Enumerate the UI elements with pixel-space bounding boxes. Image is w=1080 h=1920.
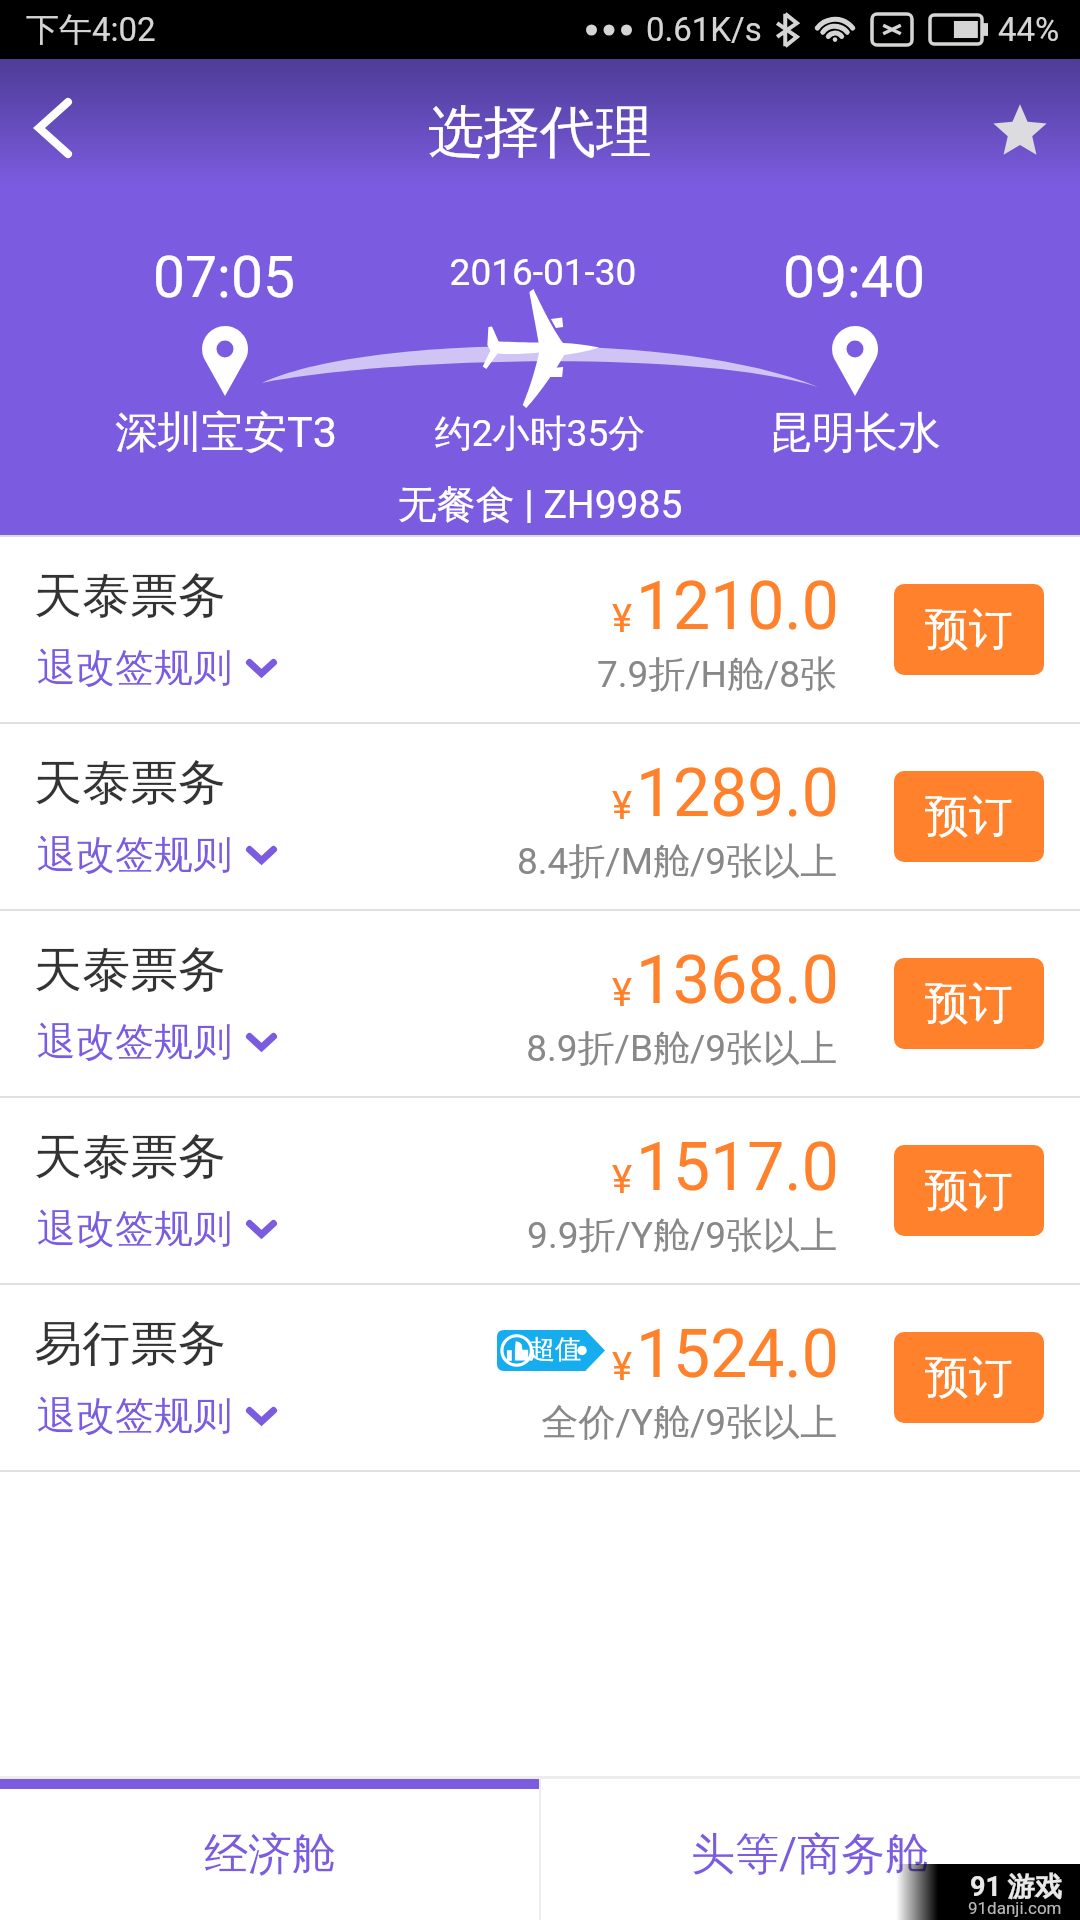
- button[interactable]: 退改签规则: [33, 825, 281, 884]
- staticText: 8.9折/B舱/9张以上: [251, 1025, 837, 1072]
- staticText: ¥: [612, 597, 632, 642]
- staticText: 天泰票务: [34, 566, 226, 626]
- button[interactable]: 退改签规则: [33, 1199, 281, 1258]
- button[interactable]: 天泰票务: [0, 537, 1080, 722]
- staticText: 深圳宝安T3: [58, 406, 394, 460]
- staticText: 无餐食 | ZH9985: [0, 480, 1080, 529]
- staticText: 天泰票务: [34, 940, 226, 1000]
- staticText: 91 游戏: [970, 1870, 1062, 1904]
- staticText: 选择代理: [428, 97, 652, 168]
- staticText: 退改签规则: [37, 1204, 232, 1253]
- staticText: 退改签规则: [37, 1017, 232, 1066]
- staticText: 0.61K/s: [646, 10, 762, 49]
- staticText: 8.4折/M舱/9张以上: [251, 838, 837, 885]
- button[interactable]: 经济舱: [0, 1776, 539, 1920]
- staticText: 下午4:02: [26, 9, 156, 51]
- staticText: 1524.0: [636, 1316, 839, 1393]
- staticText: 预订: [925, 976, 1013, 1031]
- button[interactable]: 退改签规则: [33, 1386, 281, 1445]
- button[interactable]: 预订: [894, 584, 1044, 675]
- staticText: 07:05: [104, 244, 344, 311]
- button[interactable]: 头等/商务舱: [541, 1776, 1080, 1920]
- button[interactable]: 天泰票务: [0, 1098, 1080, 1283]
- staticText: 预订: [925, 602, 1013, 657]
- staticText: 09:40: [734, 244, 974, 311]
- staticText: ¥: [612, 1158, 632, 1203]
- staticText: 预订: [925, 1163, 1013, 1218]
- staticText: 退改签规则: [37, 643, 232, 692]
- button[interactable]: Favorite: [964, 59, 1080, 186]
- button[interactable]: 天泰票务: [0, 911, 1080, 1096]
- staticText: 易行票务: [34, 1314, 226, 1374]
- staticText: ¥: [612, 1345, 632, 1390]
- staticText: 2016-01-30: [3, 251, 1080, 294]
- button[interactable]: Back: [0, 59, 106, 186]
- staticText: 9.9折/Y舱/9张以上: [251, 1212, 837, 1259]
- staticText: ¥: [612, 971, 632, 1016]
- button[interactable]: 易行票务: [0, 1285, 1080, 1470]
- staticText: 退改签规则: [37, 1391, 232, 1440]
- staticText: 超值: [529, 1333, 581, 1366]
- button[interactable]: 退改签规则: [33, 638, 281, 697]
- button[interactable]: 预订: [894, 771, 1044, 862]
- staticText: 天泰票务: [34, 753, 226, 813]
- staticText: 1517.0: [636, 1129, 839, 1206]
- staticText: 预订: [925, 1350, 1013, 1405]
- staticText: 预订: [925, 789, 1013, 844]
- button[interactable]: 预订: [894, 1332, 1044, 1423]
- staticText: 1210.0: [636, 568, 839, 645]
- staticText: 44%: [998, 10, 1060, 49]
- staticText: 全价/Y舱/9张以上: [251, 1399, 837, 1446]
- staticText: 1368.0: [636, 942, 839, 1019]
- staticText: 约2小时35分: [0, 410, 1080, 457]
- button[interactable]: 退改签规则: [33, 1012, 281, 1071]
- staticText: 1289.0: [636, 755, 839, 832]
- staticText: 天泰票务: [34, 1127, 226, 1187]
- staticText: 退改签规则: [37, 830, 232, 879]
- button[interactable]: 预订: [894, 958, 1044, 1049]
- staticText: ¥: [612, 784, 632, 829]
- staticText: 91danji.com: [968, 1898, 1062, 1918]
- staticText: 昆明长水: [687, 406, 1023, 460]
- button[interactable]: 预订: [894, 1145, 1044, 1236]
- staticText: 头等/商务舱: [691, 1827, 930, 1882]
- staticText: 7.9折/H舱/8张: [251, 651, 837, 698]
- staticText: 经济舱: [204, 1827, 336, 1882]
- button[interactable]: 天泰票务: [0, 724, 1080, 909]
